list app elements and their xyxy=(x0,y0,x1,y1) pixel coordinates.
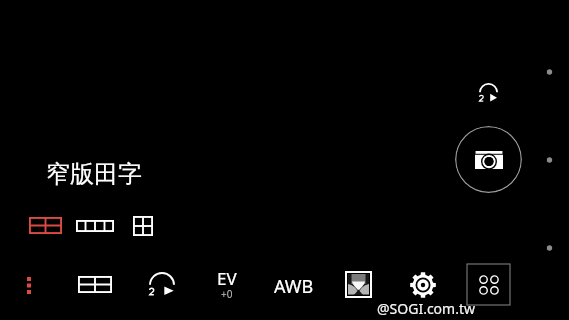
button[interactable]: More options xyxy=(13,269,44,301)
staticText: @SOGI.com.tw xyxy=(377,299,475,318)
button[interactable]: Grid layout xyxy=(72,268,117,301)
button[interactable]: Self timer 2 seconds xyxy=(469,81,507,111)
button[interactable]: Four strip layout xyxy=(68,209,122,242)
button[interactable]: Scene mode xyxy=(343,269,373,299)
staticText: AWB xyxy=(274,274,314,299)
button[interactable]: Square grid layout xyxy=(125,209,161,242)
button[interactable]: Settings xyxy=(408,270,437,299)
button[interactable]: Shooting modes xyxy=(467,264,510,305)
staticText: +0 xyxy=(221,287,233,301)
button[interactable]: Shutter xyxy=(455,126,522,193)
button[interactable]: Wide grid layout xyxy=(21,209,70,242)
button[interactable]: Exposure compensation xyxy=(210,268,244,300)
staticText: 窄版田字 xyxy=(46,159,142,189)
button[interactable]: White balance xyxy=(272,272,316,300)
button[interactable]: Self timer xyxy=(141,272,183,302)
staticText: EV xyxy=(217,267,237,290)
